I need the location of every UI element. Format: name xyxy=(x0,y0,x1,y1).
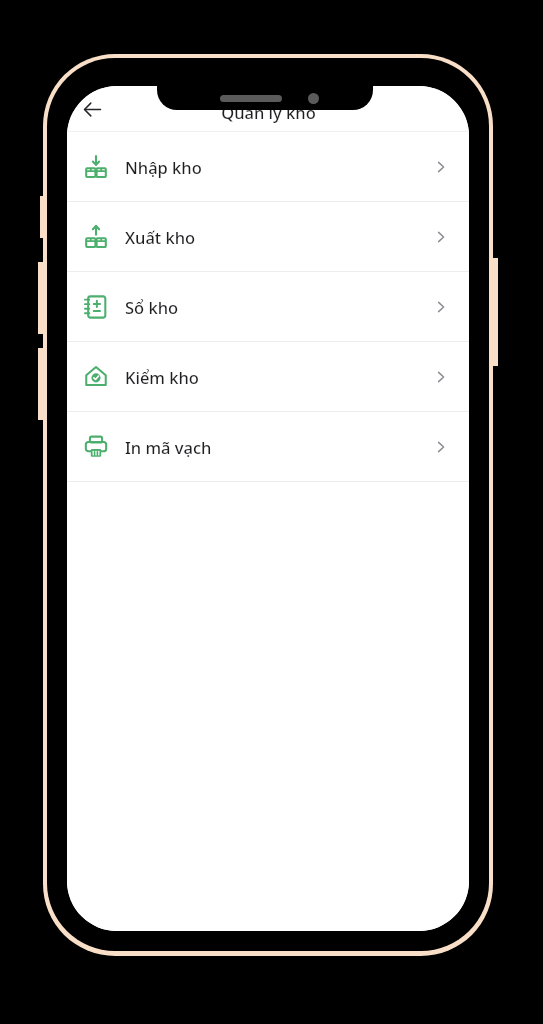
button[interactable]: In mã vạch xyxy=(67,412,469,481)
staticText: Sổ kho xyxy=(125,296,179,318)
staticText: Nhập kho xyxy=(125,156,202,178)
button[interactable]: Sổ kho xyxy=(67,272,469,341)
staticText: Xuất kho xyxy=(125,226,196,248)
staticText: Quản lý kho xyxy=(221,101,316,123)
button[interactable]: Kiểm kho xyxy=(67,342,469,411)
button[interactable]: Xuất kho xyxy=(67,202,469,271)
button[interactable]: Nhập kho xyxy=(67,132,469,201)
button[interactable]: Back xyxy=(73,90,111,128)
staticText: In mã vạch xyxy=(125,436,212,458)
staticText: Kiểm kho xyxy=(125,366,199,388)
